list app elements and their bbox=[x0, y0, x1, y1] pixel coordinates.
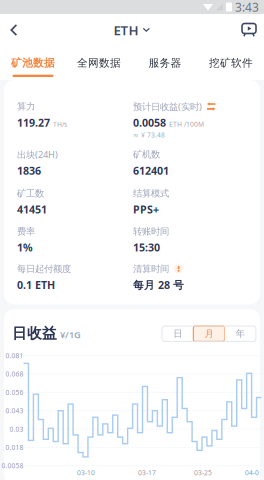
button[interactable]: 月 bbox=[193, 326, 225, 341]
staticText: 清算时间 bbox=[133, 263, 169, 275]
staticText: 年 bbox=[236, 328, 245, 339]
staticText: 月 bbox=[204, 328, 213, 339]
button[interactable]: 全网数据 bbox=[66, 46, 132, 80]
staticText: TH/s bbox=[53, 120, 67, 128]
button[interactable]: Back bbox=[0, 14, 28, 46]
staticText: 3:43 bbox=[235, 0, 259, 15]
staticText: ≈ ¥ 73.48 bbox=[133, 131, 165, 139]
staticText: 矿机数 bbox=[133, 149, 160, 160]
staticText: 日 bbox=[173, 328, 182, 339]
staticText: 1% bbox=[17, 240, 33, 254]
staticText: 0.018 bbox=[5, 443, 23, 452]
staticText: 服务器 bbox=[148, 56, 181, 69]
staticText: 15:30 bbox=[133, 240, 160, 254]
staticText: PPS+ bbox=[133, 202, 159, 216]
staticText: 41451 bbox=[17, 202, 47, 216]
button[interactable]: 年 bbox=[225, 326, 256, 341]
staticText: 03-17 bbox=[138, 468, 156, 477]
staticText: 119.27 bbox=[17, 115, 50, 130]
staticText: 挖矿软件 bbox=[209, 56, 253, 69]
button[interactable]: 矿池数据 bbox=[0, 46, 66, 80]
staticText: 0.0058 bbox=[1, 461, 23, 470]
staticText: 03-10 bbox=[77, 468, 95, 477]
button[interactable]: Screen mirroring bbox=[234, 14, 264, 46]
staticText: ETH /100M bbox=[169, 120, 204, 128]
staticText: 0.068 bbox=[5, 370, 23, 378]
staticText: ¥/1G bbox=[60, 328, 81, 341]
staticText: 出块(24H) bbox=[17, 148, 58, 161]
staticText: 0.056 bbox=[5, 388, 23, 397]
staticText: 0.0058 bbox=[133, 115, 166, 130]
button[interactable]: 日 bbox=[162, 326, 193, 341]
staticText: 0.1 ETH bbox=[17, 278, 55, 292]
staticText: 0.043 bbox=[5, 406, 23, 415]
staticText: 04-0 bbox=[245, 468, 259, 477]
staticText: 全网数据 bbox=[77, 56, 121, 69]
staticText: 转账时间 bbox=[133, 226, 169, 237]
button[interactable]: 挖矿软件 bbox=[198, 46, 264, 80]
staticText: 每月 28 号 bbox=[133, 278, 184, 292]
staticText: 矿池数据 bbox=[11, 56, 55, 69]
staticText: 预计日收益(实时) bbox=[133, 100, 202, 113]
staticText: ETH bbox=[113, 21, 138, 39]
staticText: 612401 bbox=[133, 163, 169, 178]
staticText: 0.081 bbox=[5, 351, 23, 360]
staticText: 日收益 bbox=[12, 324, 57, 342]
staticText: 算力 bbox=[17, 101, 35, 112]
staticText: 每日起付额度 bbox=[17, 263, 71, 275]
staticText: 0.03 bbox=[9, 425, 23, 433]
staticText: 矿工数 bbox=[17, 188, 44, 199]
staticText: 结算模式 bbox=[133, 188, 169, 199]
staticText: 费率 bbox=[17, 226, 35, 237]
button[interactable]: 服务器 bbox=[132, 46, 198, 80]
button[interactable]: ETH bbox=[113, 14, 150, 46]
staticText: 03-25 bbox=[194, 468, 212, 477]
staticText: 1836 bbox=[17, 163, 41, 178]
